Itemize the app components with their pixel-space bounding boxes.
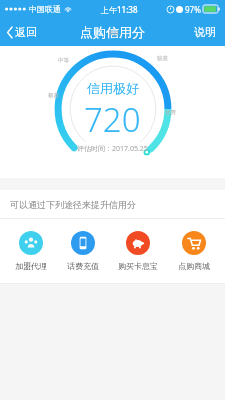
button[interactable]: 购买卡息宝 bbox=[114, 231, 162, 271]
staticText: 评估时间：2017.05.25 bbox=[77, 144, 148, 154]
staticText: 话费充值 bbox=[67, 261, 99, 271]
button[interactable]: 话费充值 bbox=[63, 231, 103, 271]
staticText: 97% bbox=[185, 4, 201, 15]
other: 点购商城 bbox=[182, 231, 206, 255]
staticText: 上午11:38 bbox=[101, 4, 138, 15]
staticText: 中国联通 bbox=[29, 4, 61, 14]
staticText: 可以通过下列途径来提升信用分 bbox=[10, 199, 136, 210]
other: 话费充值 bbox=[71, 231, 95, 255]
staticText: 返回 bbox=[15, 25, 37, 39]
staticText: 信用极好 bbox=[87, 80, 139, 96]
staticText: 720 bbox=[84, 97, 141, 142]
staticText: 说明 bbox=[194, 25, 216, 39]
staticText: 较差 bbox=[157, 55, 168, 62]
staticText: 中等 bbox=[58, 57, 69, 64]
button[interactable]: 加盟代理 bbox=[11, 231, 51, 271]
staticText: 良好 bbox=[108, 30, 119, 37]
button[interactable]: 说明 bbox=[185, 18, 225, 46]
staticText: 优秀 bbox=[165, 109, 176, 116]
other: 加盟代理 bbox=[19, 231, 43, 255]
staticText: 加盟代理 bbox=[15, 261, 47, 271]
staticText: 极差 bbox=[48, 92, 59, 99]
button[interactable]: 点购商城 bbox=[174, 231, 214, 271]
button[interactable]: 返回 bbox=[0, 18, 47, 46]
staticText: 点购信用分 bbox=[80, 24, 145, 40]
staticText: 点购商城 bbox=[178, 261, 210, 271]
staticText: 购买卡息宝 bbox=[118, 261, 158, 271]
other: 购买卡息宝 bbox=[126, 231, 150, 255]
